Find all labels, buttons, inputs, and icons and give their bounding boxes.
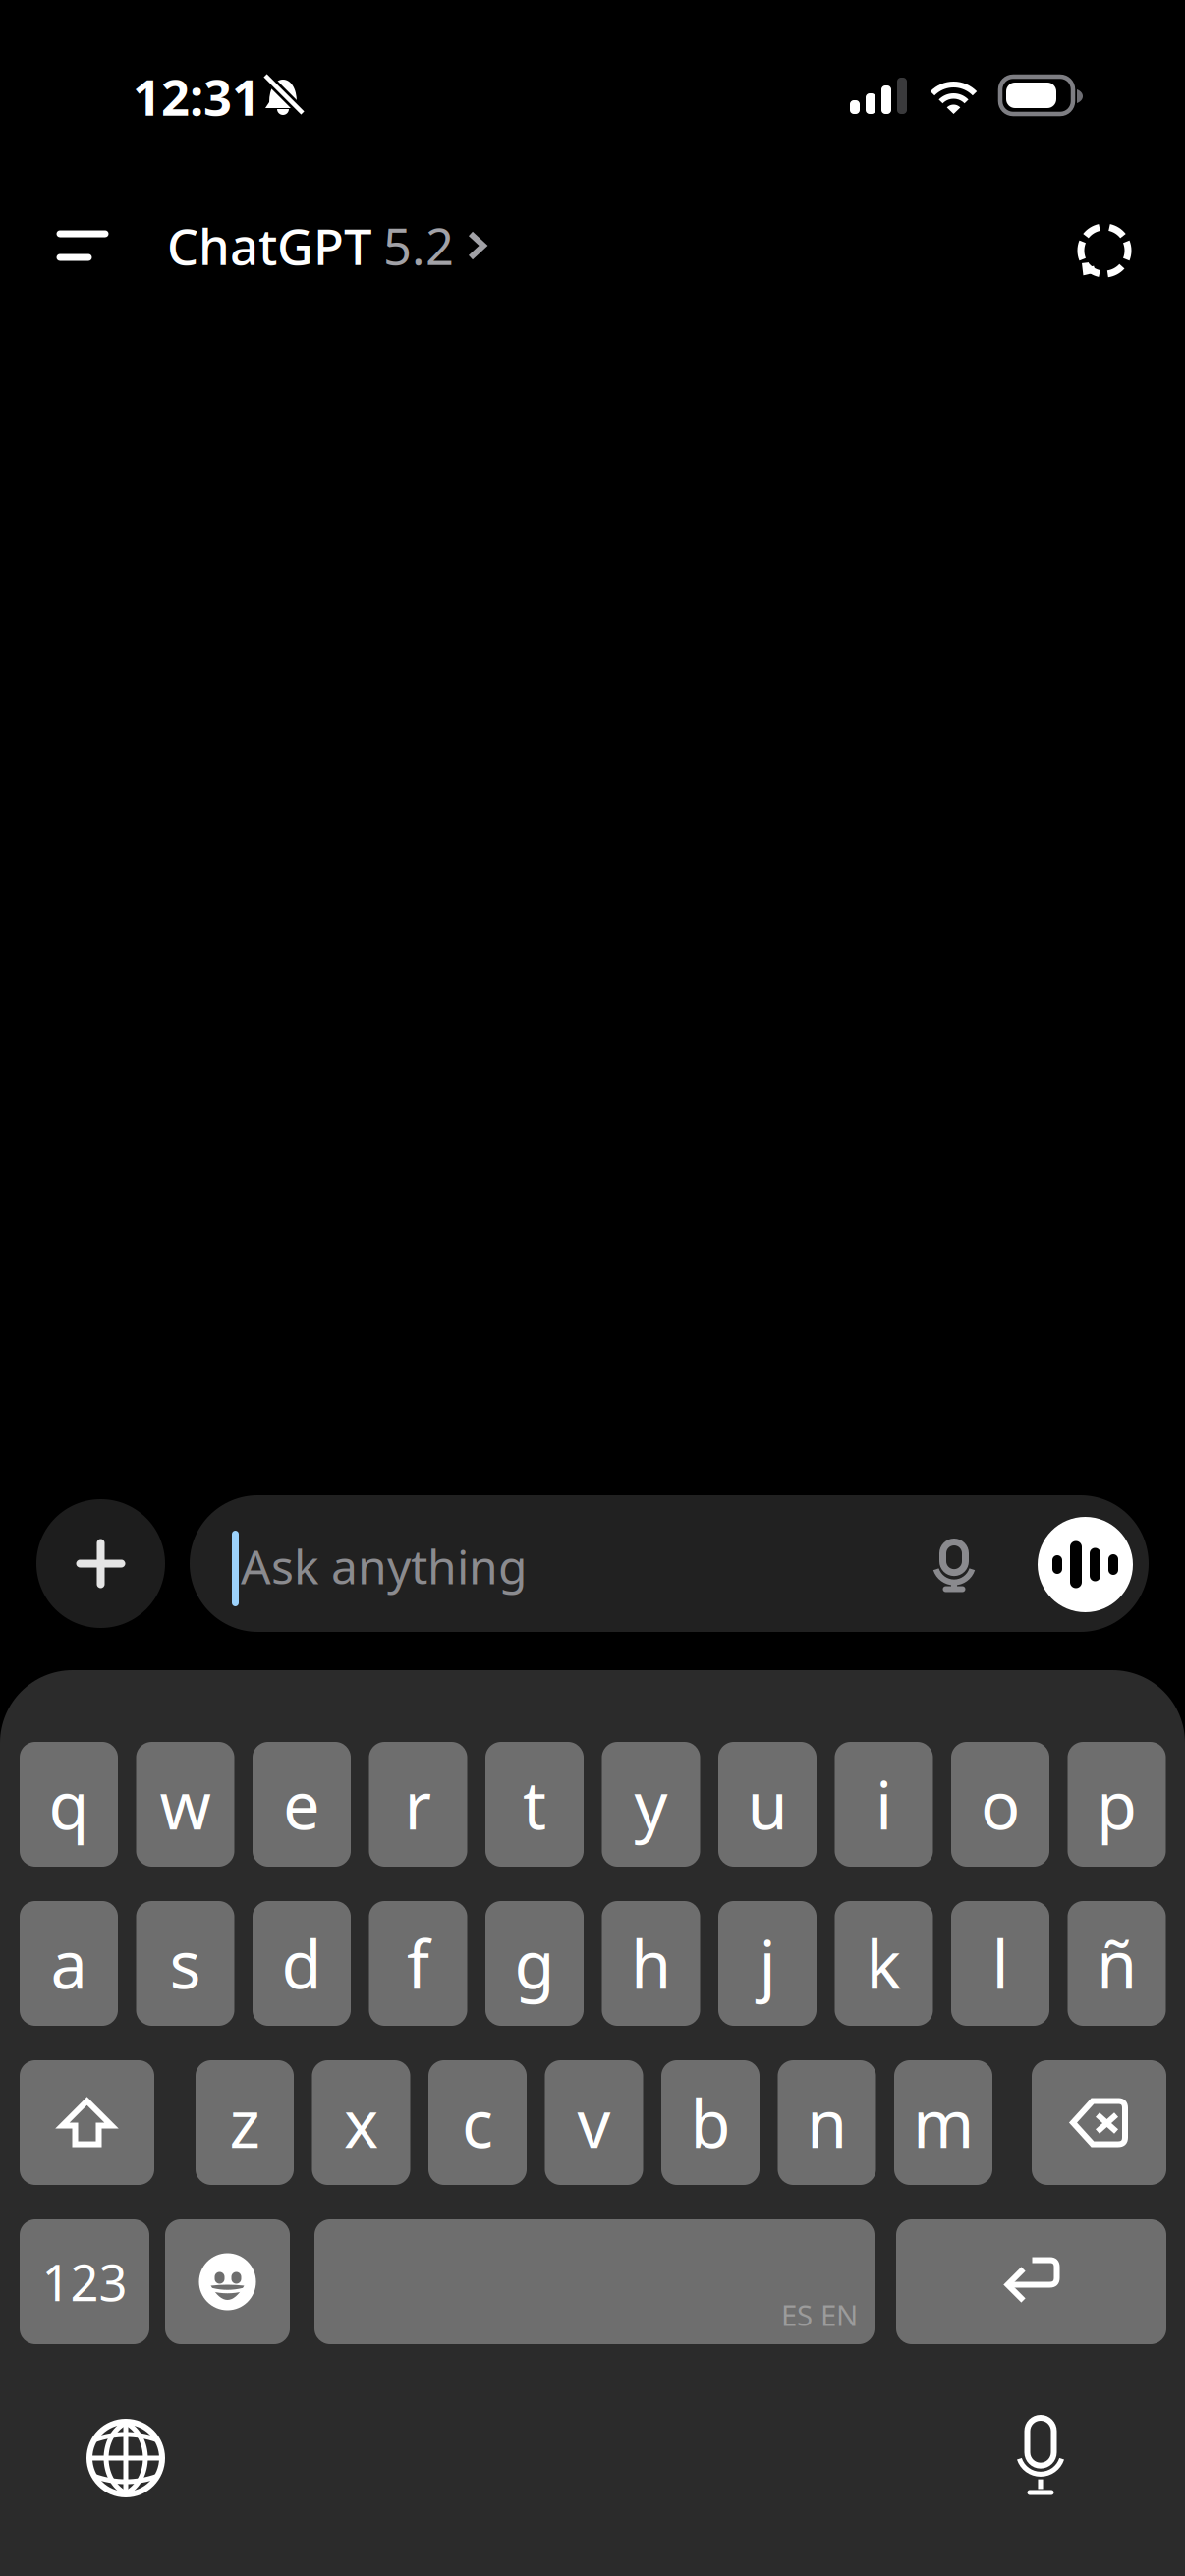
button[interactable]: Change keyboard xyxy=(86,2419,165,2497)
button[interactable]: Dictate xyxy=(931,1539,977,1593)
button[interactable]: i xyxy=(835,1742,933,1867)
staticText: v xyxy=(577,2078,611,2167)
button[interactable]: Sidebar xyxy=(24,193,141,299)
button[interactable]: t xyxy=(485,1742,584,1867)
staticText: d xyxy=(282,1919,322,2008)
staticText: p xyxy=(1097,1760,1137,1849)
staticText: g xyxy=(514,1919,555,2008)
button[interactable] xyxy=(1032,2060,1166,2185)
button[interactable]: k xyxy=(835,1901,933,2026)
button[interactable]: ES EN xyxy=(314,2219,875,2344)
staticText: a xyxy=(51,1919,87,2008)
button[interactable]: l xyxy=(951,1901,1049,2026)
button[interactable]: x xyxy=(312,2060,410,2185)
staticText: 12:31 xyxy=(133,62,260,130)
staticText: o xyxy=(981,1760,1020,1849)
button[interactable]: c xyxy=(428,2060,527,2185)
staticText: f xyxy=(407,1919,429,2008)
button[interactable]: h xyxy=(602,1901,700,2026)
staticText: e xyxy=(283,1760,320,1849)
button[interactable]: d xyxy=(253,1901,351,2026)
staticText: ChatGPT xyxy=(167,212,371,280)
staticText: q xyxy=(49,1760,89,1849)
button[interactable]: ñ xyxy=(1068,1901,1166,2026)
staticText: ES EN xyxy=(781,2295,858,2334)
button[interactable]: v xyxy=(545,2060,643,2185)
staticText: c xyxy=(462,2078,493,2167)
staticText: h xyxy=(631,1919,671,2008)
button[interactable]: g xyxy=(485,1901,584,2026)
staticText: l xyxy=(992,1919,1009,2008)
button[interactable]: f xyxy=(369,1901,467,2026)
button[interactable]: ChatGPT xyxy=(167,193,501,299)
staticText: k xyxy=(866,1919,902,2008)
button[interactable]: e xyxy=(253,1742,351,1867)
button[interactable]: z xyxy=(196,2060,294,2185)
button[interactable]: 123 xyxy=(20,2219,149,2344)
staticText: u xyxy=(747,1760,788,1849)
button[interactable]: q xyxy=(20,1742,118,1867)
staticText: j xyxy=(759,1919,776,2008)
button[interactable]: Dictation xyxy=(1014,2415,1067,2495)
button[interactable]: u xyxy=(718,1742,817,1867)
staticText: ñ xyxy=(1097,1919,1137,2008)
staticText: b xyxy=(690,2078,731,2167)
staticText: i xyxy=(875,1760,892,1849)
button[interactable]: s xyxy=(136,1901,234,2026)
staticText: 123 xyxy=(42,2248,127,2316)
staticText: s xyxy=(169,1919,201,2008)
button[interactable]: w xyxy=(136,1742,234,1867)
button[interactable]: r xyxy=(369,1742,467,1867)
staticText: x xyxy=(344,2078,378,2167)
button[interactable]: b xyxy=(661,2060,760,2185)
button[interactable]: p xyxy=(1068,1742,1166,1867)
button[interactable]: y xyxy=(602,1742,700,1867)
button[interactable]: a xyxy=(20,1901,118,2026)
button[interactable] xyxy=(165,2219,290,2344)
button[interactable]: o xyxy=(951,1742,1049,1867)
staticText: n xyxy=(807,2078,847,2167)
button[interactable]: Temporary chat xyxy=(1075,221,1134,280)
button[interactable] xyxy=(20,2060,154,2185)
staticText: m xyxy=(913,2078,974,2167)
button[interactable]: m xyxy=(894,2060,992,2185)
button[interactable]: j xyxy=(718,1901,817,2026)
staticText: w xyxy=(160,1760,211,1849)
staticText: z xyxy=(229,2078,260,2167)
staticText: y xyxy=(634,1760,668,1849)
button[interactable]: n xyxy=(778,2060,876,2185)
staticText: Ask anything xyxy=(241,1534,528,1598)
button[interactable]: Voice mode xyxy=(1038,1517,1133,1612)
button[interactable]: Add attachment xyxy=(36,1499,165,1628)
staticText: 5.2 xyxy=(383,212,454,280)
staticText: t xyxy=(523,1760,546,1849)
button[interactable] xyxy=(896,2219,1166,2344)
staticText: r xyxy=(404,1760,432,1849)
